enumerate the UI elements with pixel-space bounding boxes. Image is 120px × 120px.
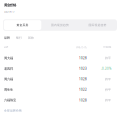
staticText: 1022 [79, 88, 87, 92]
staticText: 持平 [105, 77, 111, 81]
staticText: 黄金价格 [4, 3, 16, 7]
staticText: 黄金买卖 [16, 23, 28, 27]
staticText: 全部品牌价格 [4, 109, 22, 112]
button[interactable]: 黄金买卖 [4, 20, 41, 30]
staticText: 1028 [79, 98, 87, 102]
button[interactable]: 周六福 [0, 71, 120, 81]
button[interactable]: 国际现货趋势 [79, 20, 116, 30]
button[interactable]: 银行 [16, 36, 22, 39]
button[interactable]: 周大福 [0, 49, 120, 60]
staticText: 1028 [79, 56, 87, 60]
button[interactable]: 品牌 [4, 36, 10, 39]
staticText: 回收 [28, 36, 34, 39]
staticText: 持平 [105, 98, 111, 102]
staticText: 日涨跌幅 [103, 46, 111, 48]
staticText: 国际现货趋势 [88, 23, 106, 27]
staticText: 品牌 [4, 46, 8, 48]
staticText: 六福珠宝 [4, 98, 16, 102]
staticText: 品牌 [4, 36, 10, 39]
staticText: 价格(元/克) [76, 45, 87, 49]
staticText: 银行 [16, 36, 22, 39]
staticText: 1023 [79, 67, 87, 71]
button[interactable]: 回收 [28, 36, 34, 39]
staticText: 持平 [105, 88, 111, 92]
button[interactable]: 国内现货趋势 [41, 20, 79, 30]
button[interactable]: 老凤祥 [0, 60, 120, 71]
staticText: 1028 [79, 77, 87, 81]
staticText: 2025-04-19 [4, 10, 14, 13]
staticText: 周六福 [4, 77, 13, 81]
staticText: 周大福 [4, 56, 13, 60]
staticText: 老凤祥 [4, 67, 13, 71]
button[interactable]: 全部品牌价格 [0, 102, 22, 112]
staticText: 国内现货趋势 [51, 23, 69, 27]
staticText: 持平 [105, 56, 111, 60]
staticText: 周生生 [4, 88, 13, 92]
staticText: -0.20% [101, 67, 111, 71]
button[interactable]: 六福珠宝 [0, 92, 120, 102]
button[interactable]: 周生生 [0, 81, 120, 92]
